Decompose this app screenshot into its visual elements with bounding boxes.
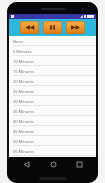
staticText: 30 Minutes — [13, 99, 34, 104]
button[interactable]: Fast forward — [66, 21, 85, 34]
button[interactable]: 5 Minutes — [9, 46, 96, 56]
staticText: 25 Minutes — [13, 89, 34, 94]
button[interactable]: 35 Minutes — [9, 106, 96, 116]
button[interactable]: 45 Minutes — [9, 126, 96, 136]
staticText: 5 Minutes — [13, 49, 32, 54]
button[interactable]: Rewind — [20, 21, 39, 34]
staticText: 55 Minutes — [13, 149, 34, 154]
staticText: 15 Minutes — [13, 69, 34, 74]
button[interactable]: 25 Minutes — [9, 86, 96, 96]
staticText: 10 Minutes — [13, 59, 34, 64]
button[interactable]: 30 Minutes — [9, 96, 96, 106]
button[interactable]: 20 Minutes — [9, 76, 96, 86]
button[interactable]: 55 Minutes — [9, 146, 96, 156]
button[interactable]: None — [9, 36, 96, 46]
button[interactable]: 15 Minutes — [9, 66, 96, 76]
button[interactable]: 10 Minutes — [9, 56, 96, 66]
button[interactable]: Pause — [43, 21, 62, 34]
button[interactable]: 40 Minutes — [9, 116, 96, 126]
button[interactable]: Recents — [74, 159, 84, 169]
button[interactable]: Home — [48, 159, 58, 169]
button[interactable]: 50 Minutes — [9, 136, 96, 146]
staticText: None — [13, 39, 24, 44]
button[interactable]: Back — [21, 159, 31, 169]
staticText: 45 Minutes — [13, 129, 34, 134]
staticText: 20 Minutes — [13, 79, 34, 84]
staticText: 50 Minutes — [13, 139, 34, 144]
staticText: 40 Minutes — [13, 119, 34, 124]
staticText: 35 Minutes — [13, 109, 34, 114]
